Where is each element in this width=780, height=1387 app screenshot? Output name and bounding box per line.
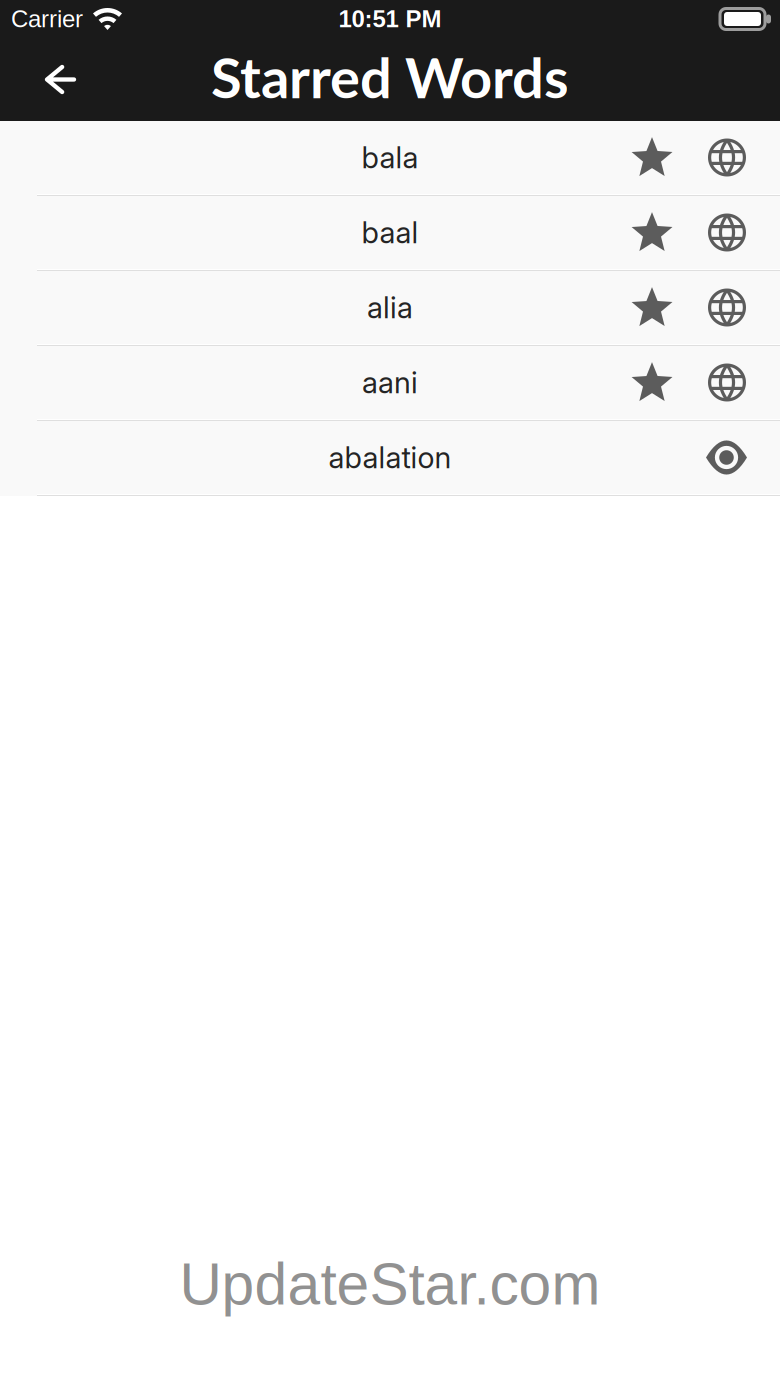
staticText: baal [361,215,418,250]
staticText: alia [367,290,413,325]
staticText: aani [362,365,418,400]
staticText: 10:51 PM [338,6,441,32]
staticText: Starred Words [211,43,569,110]
staticText: Carrier [11,6,83,32]
button[interactable]: alia [0,271,780,346]
button[interactable]: baal [0,196,780,271]
button[interactable]: bala [0,121,780,196]
button[interactable]: Back [32,52,89,107]
button[interactable]: abalation [0,421,780,496]
staticText: UpdateStar.com [179,1251,600,1317]
button[interactable]: aani [0,346,780,421]
staticText: bala [361,140,418,175]
staticText: abalation [328,440,451,475]
